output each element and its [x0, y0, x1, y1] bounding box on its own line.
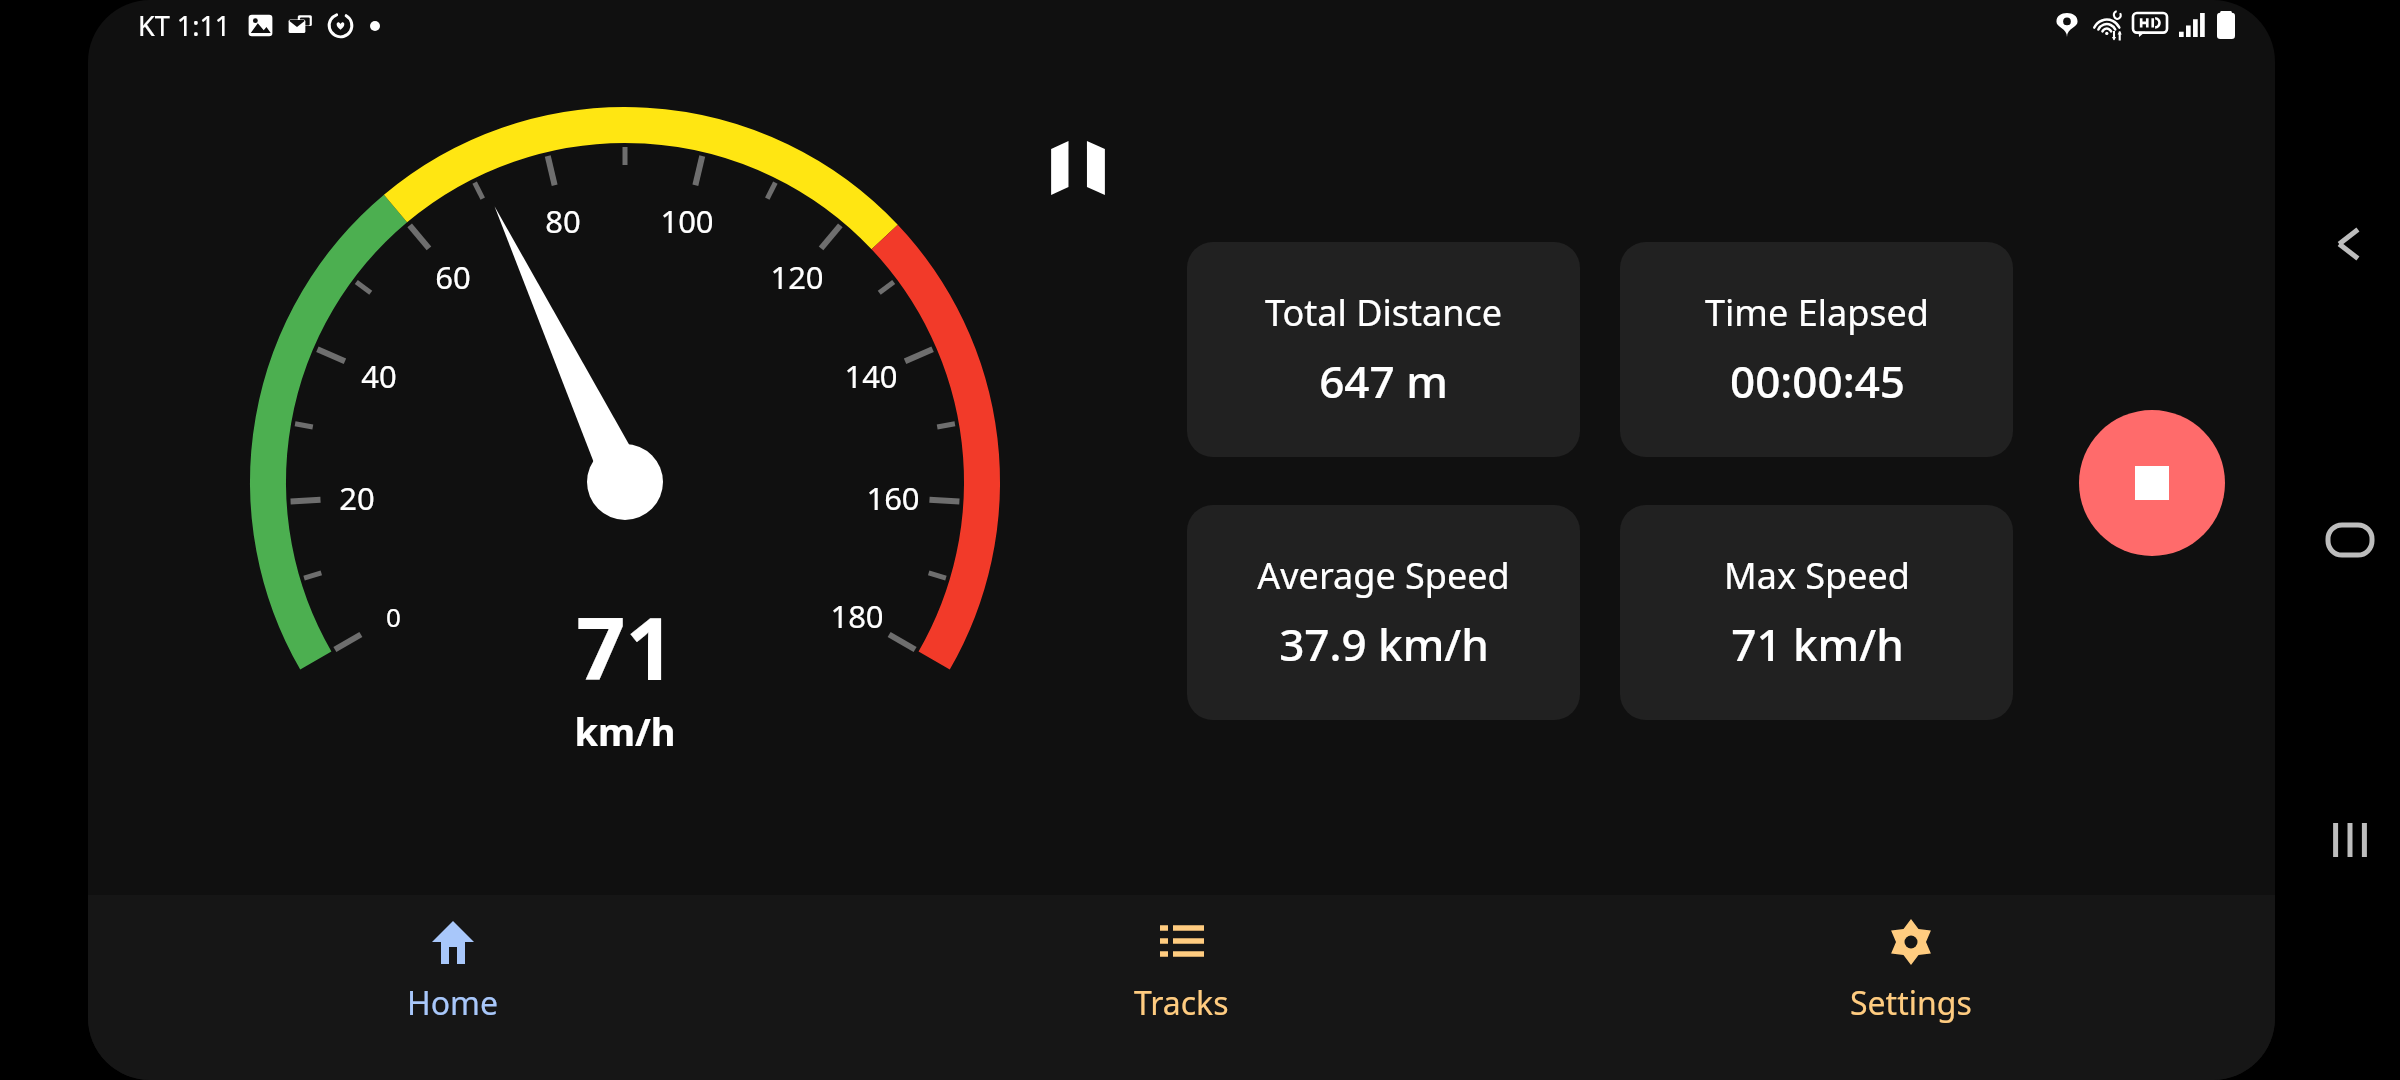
staticText: 80 — [545, 200, 581, 242]
button[interactable]: Stop recording — [2079, 410, 2225, 556]
staticText: km/h — [574, 705, 676, 757]
staticText: 60 — [435, 256, 471, 298]
staticText: 71 km/h — [1731, 614, 1904, 674]
staticText: 120 — [770, 256, 824, 298]
button[interactable]: Average Speed — [1187, 505, 1580, 720]
button[interactable]: Back — [2318, 212, 2382, 276]
staticText: Tracks — [1134, 981, 1229, 1025]
staticText: 140 — [844, 355, 898, 397]
staticText: Time Elapsed — [1705, 288, 1929, 337]
staticText: 0 — [386, 599, 401, 634]
staticText: Home — [407, 981, 499, 1025]
button[interactable]: Settings — [1546, 895, 2275, 1080]
staticText: Average Speed — [1257, 551, 1510, 600]
staticText: 37.9 km/h — [1279, 614, 1489, 674]
staticText: Settings — [1850, 981, 1972, 1025]
button[interactable]: Recent apps — [2318, 808, 2382, 872]
button[interactable]: Max Speed — [1620, 505, 2013, 720]
staticText: KT 1:11 — [138, 7, 231, 44]
staticText: Max Speed — [1724, 551, 1910, 600]
staticText: 20 — [339, 477, 375, 519]
staticText: 00:00:45 — [1730, 351, 1905, 411]
staticText: 71 — [576, 588, 675, 705]
staticText: Total Distance — [1265, 288, 1502, 337]
button[interactable]: Home — [88, 895, 817, 1080]
button[interactable]: Total Distance — [1187, 242, 1580, 457]
button[interactable]: Time Elapsed — [1620, 242, 2013, 457]
staticText: 647 m — [1319, 351, 1448, 411]
staticText: 160 — [866, 477, 920, 519]
button[interactable]: Map — [1028, 118, 1128, 218]
button[interactable]: Home — [2318, 508, 2382, 572]
button[interactable]: Tracks — [817, 895, 1546, 1080]
staticText: 40 — [361, 355, 397, 397]
staticText: 100 — [660, 200, 714, 242]
staticText: 180 — [830, 595, 884, 637]
